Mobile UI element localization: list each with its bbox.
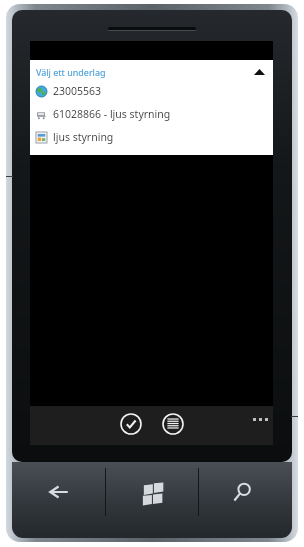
button[interactable]: Search (198, 462, 292, 522)
button[interactable]: Välj ett underlag (30, 60, 273, 84)
button[interactable]: More options (249, 408, 271, 430)
staticText: Välj ett underlag (36, 66, 106, 78)
button[interactable]: Back (12, 462, 105, 522)
staticText: ljus styrning (53, 130, 114, 144)
button[interactable]: Accept (117, 410, 145, 438)
button[interactable]: Start (105, 462, 198, 522)
button[interactable]: 23005563 (30, 84, 273, 107)
staticText: 61028866 - ljus styrning (53, 107, 171, 121)
button[interactable]: 61028866 - ljus styrning (30, 107, 273, 130)
button[interactable]: List (159, 410, 187, 438)
button[interactable]: Collapse (251, 64, 267, 80)
staticText: 23005563 (53, 84, 102, 98)
button[interactable]: ljus styrning (30, 130, 273, 153)
